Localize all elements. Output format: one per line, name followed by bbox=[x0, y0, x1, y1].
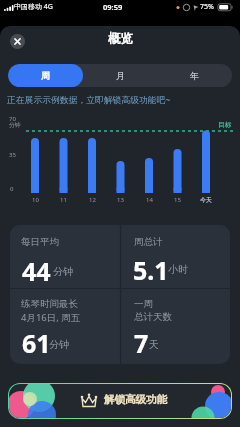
staticText: 小时 bbox=[168, 263, 188, 276]
staticText: 中国移动 4G bbox=[14, 2, 53, 12]
staticText: 14 bbox=[146, 196, 153, 204]
staticText: 总计天数 bbox=[134, 311, 172, 323]
staticText: 35 bbox=[9, 151, 16, 159]
staticText: 12 bbox=[89, 196, 96, 204]
staticText: 15 bbox=[174, 196, 181, 204]
staticText: 61 bbox=[22, 326, 51, 360]
staticText: 4月16日, 周五 bbox=[21, 311, 81, 324]
staticText: 正在展示示例数据，立即解锁高级功能吧~ bbox=[7, 94, 171, 106]
staticText: 周 bbox=[41, 70, 50, 81]
staticText: 月 bbox=[116, 70, 125, 81]
staticText: 年 bbox=[190, 70, 199, 81]
staticText: 09:59 bbox=[103, 2, 123, 12]
staticText: 每日平均 bbox=[21, 236, 59, 248]
staticText: 分钟 bbox=[53, 265, 73, 278]
staticText: 11 bbox=[60, 196, 67, 204]
staticText: 练琴时间最长 bbox=[21, 298, 78, 310]
staticText: 分钟 bbox=[9, 121, 21, 128]
staticText: 0 bbox=[10, 185, 14, 193]
button[interactable]: 周 bbox=[8, 64, 83, 87]
staticText: 一周 bbox=[134, 298, 153, 310]
staticText: 10 bbox=[32, 196, 39, 204]
button[interactable]: 解锁高级功能 bbox=[8, 383, 232, 419]
staticText: 分钟 bbox=[49, 338, 69, 351]
staticText: 今天 bbox=[200, 196, 212, 204]
button[interactable] bbox=[10, 34, 25, 49]
staticText: 解锁高级功能 bbox=[104, 393, 167, 406]
staticText: 5.1 bbox=[133, 253, 169, 287]
staticText: 44 bbox=[22, 254, 51, 288]
staticText: 13 bbox=[117, 196, 124, 204]
staticText: 天 bbox=[149, 338, 159, 351]
staticText: 概览 bbox=[108, 31, 133, 47]
staticText: 周总计 bbox=[134, 236, 163, 248]
staticText: 目标 bbox=[218, 120, 232, 129]
button[interactable]: 月 bbox=[83, 64, 158, 87]
button[interactable]: 年 bbox=[157, 64, 232, 87]
staticText: 7 bbox=[134, 326, 149, 360]
staticText: 75% bbox=[200, 2, 214, 12]
staticText: 70 bbox=[9, 115, 16, 123]
